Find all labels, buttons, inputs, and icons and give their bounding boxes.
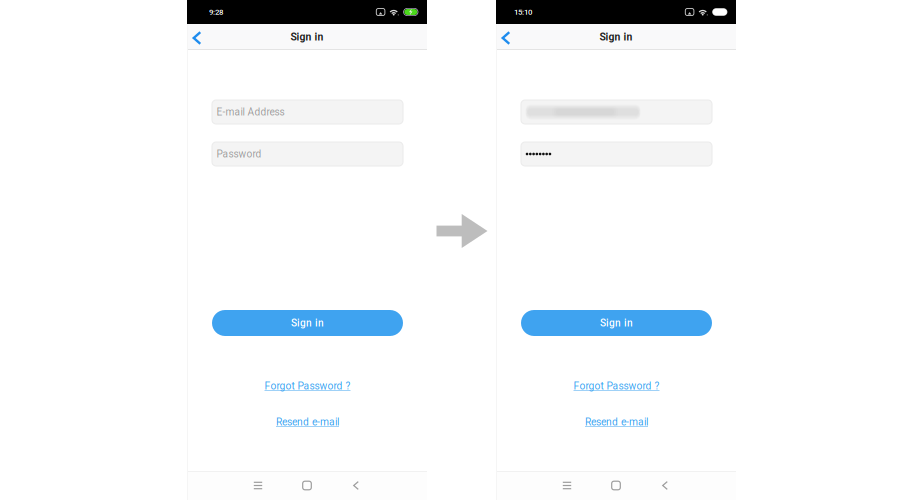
button[interactable]: Resend e-mail [585,416,648,428]
staticText: Resend e-mail [585,416,648,428]
staticText: Sign in [291,317,324,329]
button[interactable]: Home [591,471,640,500]
button[interactable]: Recent apps [542,471,591,500]
staticText: Sign in [599,31,632,43]
staticText: Sign in [290,31,323,43]
button[interactable]: Home [282,471,331,500]
button[interactable]: Back [496,24,514,50]
button[interactable]: Back [331,471,380,500]
staticText: E-mail Address [216,106,284,118]
button[interactable]: Sign in [521,310,712,336]
button[interactable]: Recent apps [233,471,282,500]
staticText: 9:28 [209,7,223,17]
button[interactable]: Forgot Password ? [573,380,659,392]
button[interactable]: Back [187,24,205,50]
button[interactable]: Back [640,471,689,500]
button[interactable]: Resend e-mail [276,416,339,428]
staticText: Sign in [600,317,633,329]
staticText: Password [216,148,261,160]
button[interactable]: Sign in [212,310,403,336]
staticText: Resend e-mail [276,416,339,428]
staticText: Forgot Password ? [573,380,659,392]
staticText: 15:10 [514,7,532,17]
button[interactable]: Forgot Password ? [264,380,350,392]
staticText: Forgot Password ? [264,380,350,392]
